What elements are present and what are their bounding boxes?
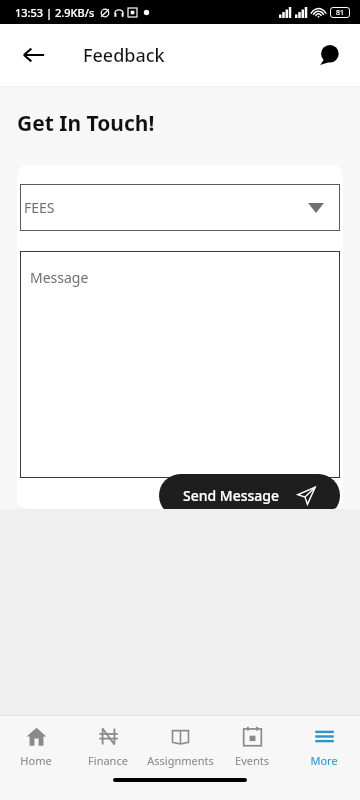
staticText: More — [310, 753, 338, 768]
button[interactable]: Send Message — [159, 474, 340, 509]
button[interactable]: More — [288, 722, 360, 772]
staticText: Feedback — [83, 43, 165, 68]
button[interactable]: Finance — [72, 722, 144, 772]
staticText: Assignments — [147, 753, 214, 768]
staticText: Home — [20, 753, 52, 768]
button[interactable]: Assignments — [144, 722, 216, 772]
button[interactable]: Back — [10, 31, 58, 79]
button[interactable]: Events — [216, 722, 288, 772]
button[interactable]: Message — [20, 251, 340, 478]
staticText: Get In Touch! — [17, 109, 155, 138]
staticText: Send Message — [183, 486, 280, 505]
staticText: 13:53 | 2.9KB/s — [15, 5, 95, 20]
staticText: Message — [30, 268, 89, 287]
staticText: Events — [235, 753, 269, 768]
staticText: FEES — [24, 198, 55, 217]
staticText: Finance — [88, 753, 128, 768]
button[interactable]: Chat — [306, 32, 352, 78]
button[interactable]: Home — [0, 722, 72, 772]
staticText: 81 — [336, 8, 345, 18]
button[interactable]: FEES — [20, 184, 340, 231]
